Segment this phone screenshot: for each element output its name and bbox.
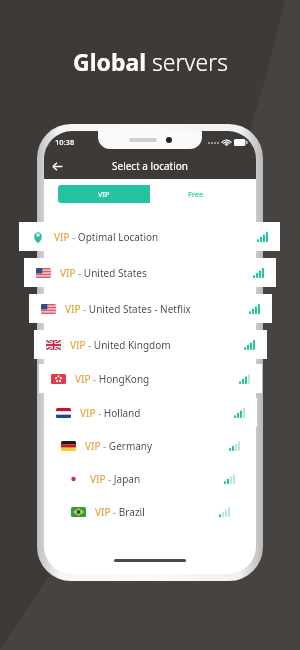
button[interactable]: VIP [58,185,150,203]
staticText: VIP - United States - Netflix [65,302,191,316]
button[interactable]: VIP - United States - Netflix [29,294,272,323]
button[interactable]: Back [44,153,70,179]
staticText: Global servers [73,46,228,77]
staticText: VIP - Holland [80,406,141,420]
button[interactable]: VIP - Optimal Location [19,222,280,251]
staticText: VIP - Brazil [95,505,145,519]
button[interactable]: VIP - HongKong [39,364,262,393]
staticText: VIP - Japan [90,472,141,486]
button[interactable]: VIP - Holland [44,398,257,427]
button[interactable]: VIP - Brazil [59,497,242,526]
staticText: VIP - Germany [85,439,153,453]
button[interactable]: VIP - United States [24,258,276,287]
staticText: VIP - United Kingdom [70,338,171,352]
staticText: VIP - Optimal Location [54,230,159,244]
staticText: VIP - United States [60,266,147,280]
button[interactable]: VIP - Japan [54,464,247,493]
button[interactable]: Free [150,185,242,203]
button[interactable]: VIP - Germany [49,431,252,460]
staticText: VIP - HongKong [75,372,150,386]
staticText: VIP [98,189,110,199]
staticText: 10:38 [55,137,75,147]
staticText: Free [188,189,204,199]
staticText: Select a location [112,159,189,173]
button[interactable]: VIP - United Kingdom [34,330,267,359]
